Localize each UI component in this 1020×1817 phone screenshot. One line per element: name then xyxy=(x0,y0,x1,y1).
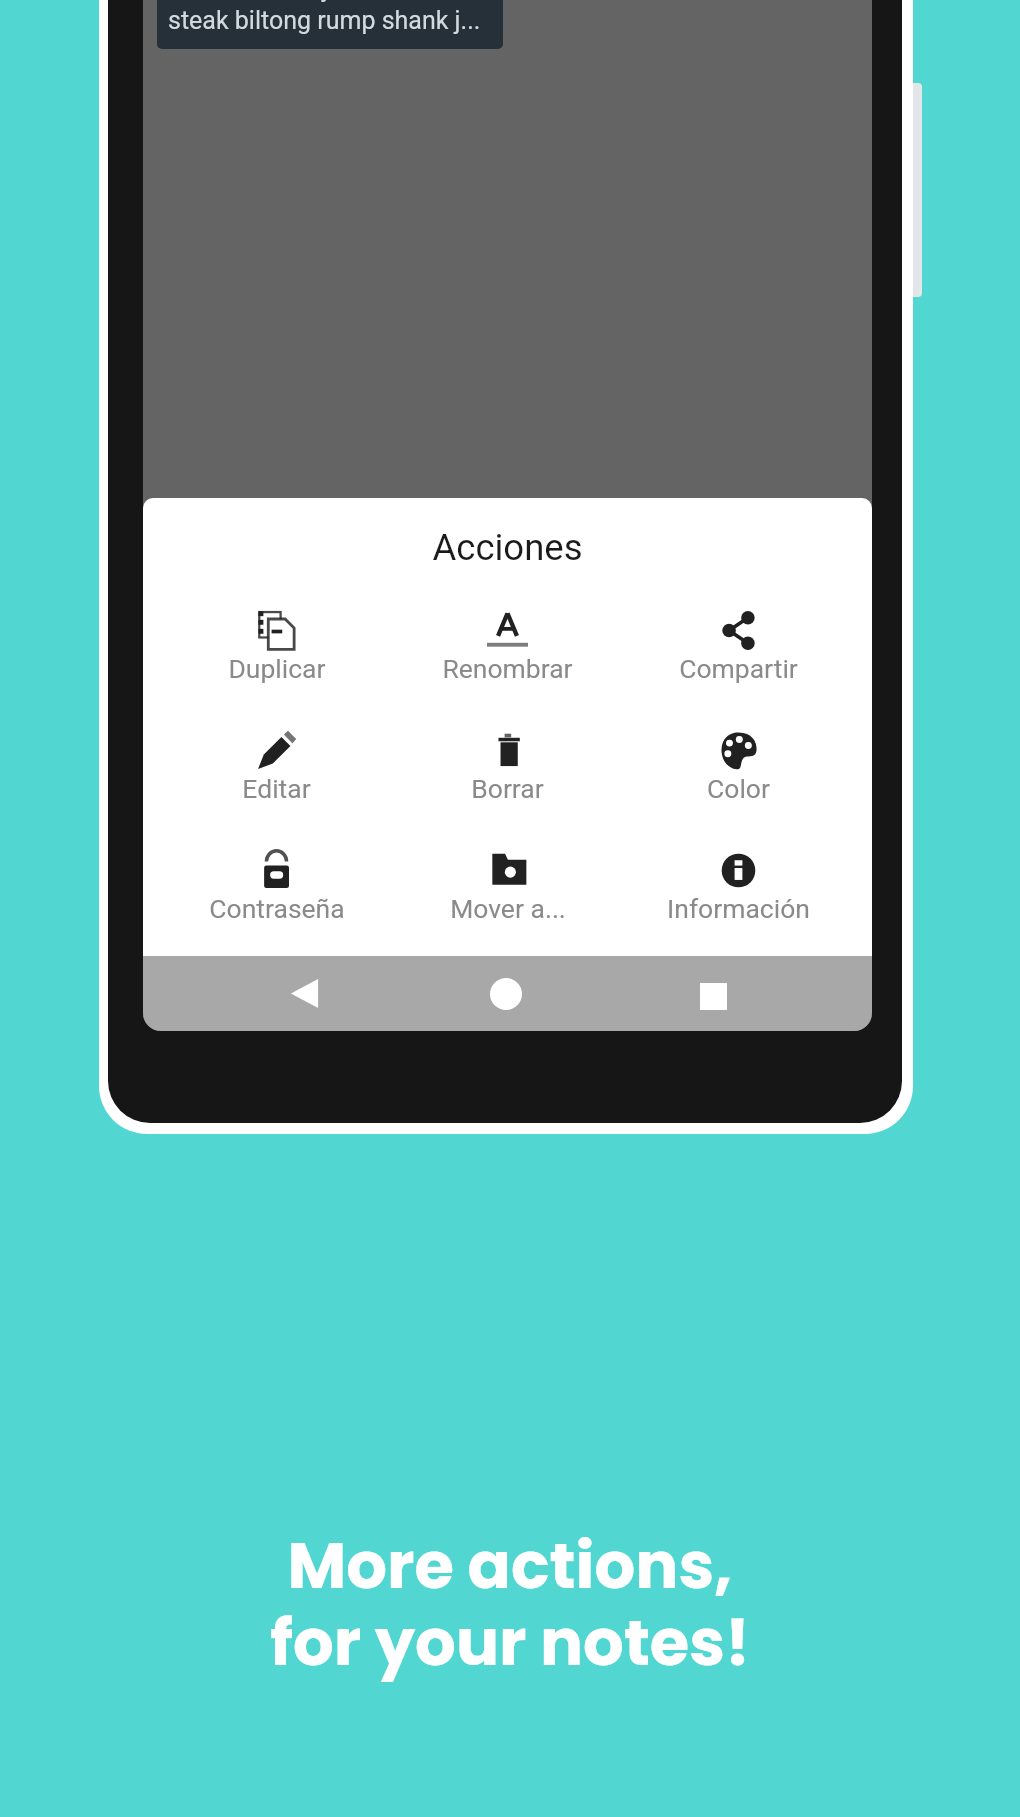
staticText: More actions, for your notes! xyxy=(0,1521,1020,1688)
staticText: Información xyxy=(667,893,810,924)
button[interactable]: Compartir xyxy=(623,601,854,721)
button[interactable]: Contraseña xyxy=(161,841,392,956)
button[interactable]: Mover a... xyxy=(392,841,623,956)
button[interactable]: Renombrar xyxy=(392,601,623,721)
staticText: Color xyxy=(707,773,770,804)
staticText: Acciones xyxy=(143,526,872,569)
staticText: Compartir xyxy=(679,653,798,684)
button[interactable]: Color xyxy=(623,721,854,841)
button[interactable]: Información xyxy=(623,841,854,956)
staticText: Duplicar xyxy=(228,653,326,684)
button[interactable]: Duplicar xyxy=(161,601,392,721)
staticText: Mover a... xyxy=(450,893,566,924)
button[interactable]: Borrar xyxy=(392,721,623,841)
staticText: Editar xyxy=(242,773,311,804)
button[interactable]: Home xyxy=(473,961,539,1027)
staticText: Borrar xyxy=(471,773,544,804)
staticText: Renombrar xyxy=(442,653,573,684)
staticText: short loin ribeye doner steak biltong ru… xyxy=(168,0,481,35)
staticText: Contraseña xyxy=(209,893,345,924)
button[interactable]: Editar xyxy=(161,721,392,841)
button[interactable]: Back xyxy=(271,960,337,1026)
button[interactable]: Note: short loin ribeye doner xyxy=(157,0,503,49)
button[interactable]: Recents xyxy=(680,963,746,1029)
